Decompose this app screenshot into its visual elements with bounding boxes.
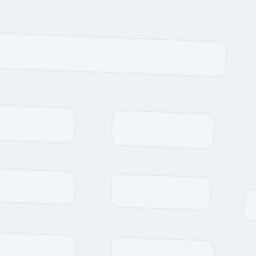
button[interactable] [116,237,219,256]
